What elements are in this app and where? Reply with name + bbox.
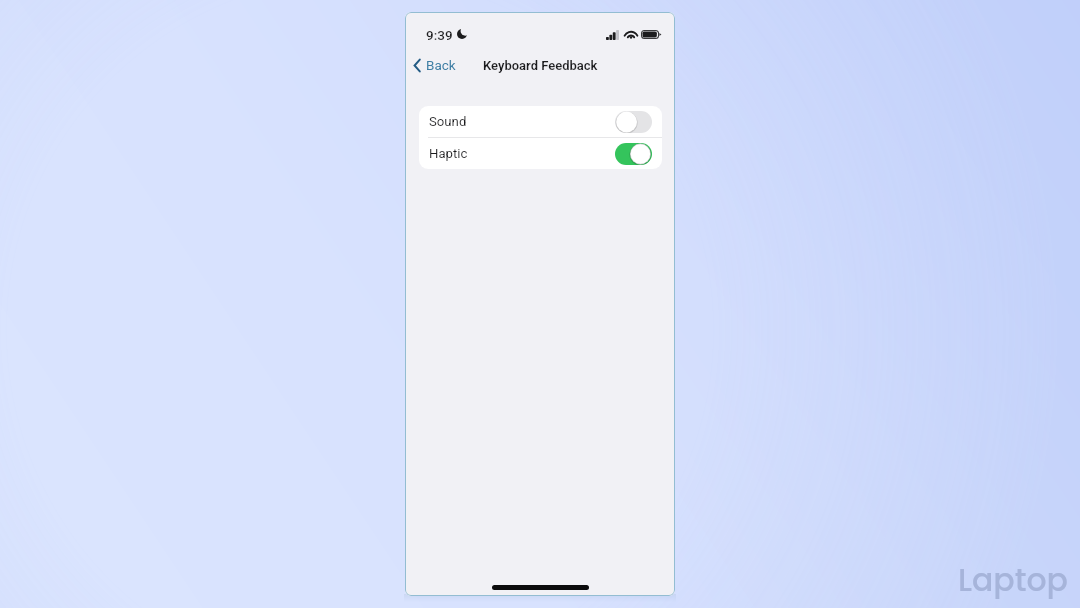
button[interactable]: Sound — [419, 106, 662, 137]
staticText: Keyboard Feedback — [483, 58, 598, 73]
button[interactable]: Back — [409, 52, 460, 78]
button[interactable]: Haptic on — [615, 143, 652, 165]
staticText: Laptop — [958, 558, 1068, 602]
staticText: Sound — [429, 114, 467, 129]
staticText: 9:39 — [426, 27, 453, 41]
button[interactable]: Haptic — [419, 138, 662, 169]
staticText: Back — [426, 57, 456, 73]
button[interactable]: Sound off — [615, 111, 652, 133]
staticText: Haptic — [429, 146, 468, 161]
